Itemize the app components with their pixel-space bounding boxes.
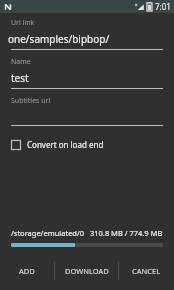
staticText: Convert on load end <box>27 139 104 150</box>
button[interactable]: one/samples/bipbop/bipbopall.m3u8 <box>11 32 163 46</box>
staticText: Name <box>11 57 31 67</box>
staticText: Subtitles url <box>11 96 51 106</box>
button[interactable]: CANCEL <box>119 256 174 286</box>
button[interactable]: ADD <box>0 256 54 286</box>
button[interactable]: DOWNLOAD <box>55 256 118 286</box>
staticText: test <box>11 71 29 85</box>
button[interactable]: test <box>11 71 163 85</box>
staticText: /storage/emulated/0 <box>11 228 85 238</box>
staticText: 7:01 <box>155 1 171 12</box>
staticText: 310.8 MB / 774.9 MB <box>90 228 163 238</box>
staticText: ADD <box>19 266 35 276</box>
staticText: one/samples/bipbop/bipbopall.m3u8 <box>8 32 160 46</box>
staticText: DOWNLOAD <box>65 266 109 276</box>
staticText: CANCEL <box>132 266 161 276</box>
staticText: Url link <box>11 18 35 28</box>
button[interactable]: Convert on load end <box>11 137 163 152</box>
